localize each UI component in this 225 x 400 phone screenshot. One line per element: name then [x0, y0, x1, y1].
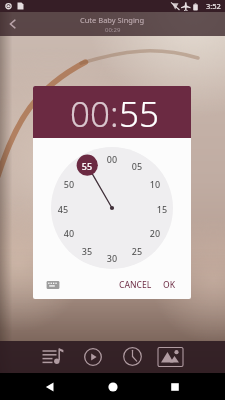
button[interactable]: Recent apps [167, 379, 183, 395]
button[interactable]: CANCEL [115, 275, 156, 295]
button[interactable]: Playlist [42, 345, 65, 368]
button[interactable]: Back [5, 16, 21, 32]
button[interactable]: Sleep timer [123, 347, 142, 366]
button[interactable]: OK [159, 275, 180, 295]
button[interactable]: Back [42, 379, 58, 395]
staticText: 10 [146, 178, 164, 190]
staticText: 25 [128, 245, 146, 257]
button[interactable]: Change background image [157, 346, 184, 368]
staticText: Cute Baby Singing [80, 15, 145, 25]
staticText: 15 [153, 203, 171, 215]
staticText: 30 [103, 252, 121, 264]
staticText: 00 [103, 153, 121, 165]
button[interactable]: Home [105, 379, 121, 395]
staticText: 45 [54, 203, 72, 215]
staticText: 55 [78, 160, 96, 172]
staticText: 3:52 [206, 1, 221, 11]
staticText: : [110, 90, 119, 138]
button[interactable]: Switch to keyboard input [46, 278, 60, 292]
button[interactable]: Play [84, 348, 102, 366]
staticText: 35 [78, 245, 96, 257]
staticText: CANCEL [119, 279, 152, 291]
staticText: 05 [128, 160, 146, 172]
staticText: OK [163, 279, 176, 291]
button[interactable]: 00 [70, 90, 110, 138]
staticText: 50 [60, 178, 78, 190]
staticText: 20 [146, 227, 164, 239]
button[interactable]: 55 [119, 90, 159, 138]
staticText: 00:29 [105, 26, 121, 34]
staticText: 40 [60, 227, 78, 239]
